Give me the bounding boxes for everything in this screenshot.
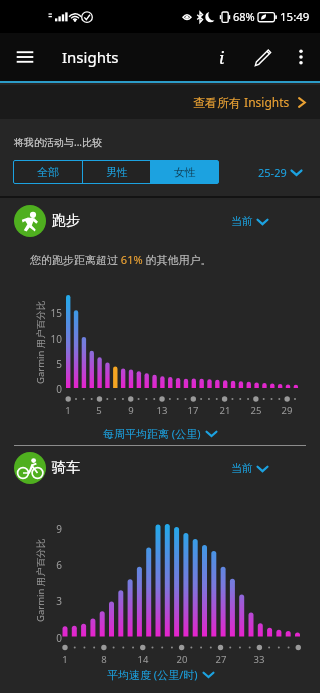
staticText: 21 (215, 404, 235, 417)
staticText: 全部 (37, 165, 59, 179)
staticText: 当前 (231, 214, 253, 228)
button[interactable]: Edit (247, 41, 279, 73)
staticText: 您的跑步距离超过 61% 的其他用户。 (30, 252, 212, 267)
staticText: 6 (48, 558, 62, 572)
button[interactable]: 女性 (151, 161, 218, 183)
staticText: 1 (58, 404, 78, 417)
staticText: 男性 (106, 165, 128, 179)
staticText: 女性 (174, 165, 196, 179)
staticText: 33 (249, 653, 269, 666)
staticText: 13 (152, 404, 172, 417)
button[interactable]: 平均速度 (公里/时) (107, 667, 214, 682)
button[interactable]: 每周平均距离 (公里) (103, 426, 217, 441)
staticText: 当前 (231, 461, 253, 475)
staticText: 5 (48, 357, 62, 371)
staticText: 15 (48, 306, 62, 320)
staticText: 0 (48, 382, 62, 396)
staticText: 68% (233, 9, 255, 24)
staticText: 每周平均距离 (公里) (103, 426, 201, 441)
staticText: 9 (121, 404, 141, 417)
button[interactable]: 当前 (231, 461, 268, 475)
button[interactable]: Open navigation menu (14, 46, 36, 68)
staticText: Garmin 用户百分比 (34, 538, 47, 622)
staticText: 查看所有 Insights (193, 94, 290, 110)
staticText: 3 (48, 594, 62, 608)
button[interactable]: 骑车 (0, 452, 320, 484)
staticText: i (219, 46, 225, 69)
staticText: 9 (48, 522, 62, 536)
staticText: 17 (183, 404, 203, 417)
staticText: 平均速度 (公里/时) (107, 667, 198, 682)
staticText: 跑步 (52, 212, 80, 230)
staticText: 15:49 (280, 9, 310, 25)
staticText: 25 (246, 404, 266, 417)
button[interactable]: 查看所有 Insights (0, 85, 320, 119)
staticText: 29 (277, 404, 297, 417)
button[interactable]: More options (286, 42, 316, 72)
button[interactable]: 跑步 (0, 205, 320, 237)
button[interactable]: Information (206, 41, 238, 73)
staticText: 8 (94, 653, 114, 666)
staticText: 20 (172, 653, 192, 666)
staticText: 14 (133, 653, 153, 666)
button[interactable]: 25-29 (258, 160, 320, 184)
staticText: 5 (89, 404, 109, 417)
button[interactable]: 当前 (231, 214, 268, 228)
staticText: Garmin 用户百分比 (34, 300, 47, 384)
staticText: 将我的活动与...比较 (14, 135, 103, 149)
staticText: Insights (62, 47, 119, 67)
staticText: 25-29 (258, 165, 287, 180)
staticText: 0 (48, 631, 62, 645)
button[interactable]: 全部 (14, 161, 82, 183)
staticText: 1 (55, 653, 75, 666)
staticText: 10 (48, 332, 62, 346)
staticText: 骑车 (52, 459, 80, 477)
staticText: 27 (211, 653, 231, 666)
button[interactable]: 男性 (83, 161, 150, 183)
